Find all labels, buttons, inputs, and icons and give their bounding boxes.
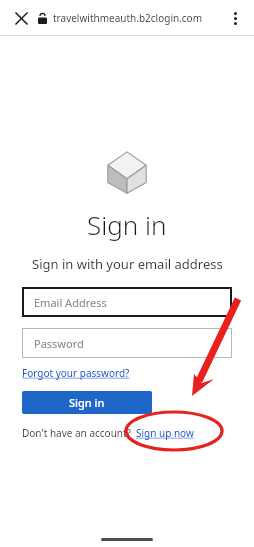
staticText: travelwithmeauth.b2clogin.com [53,11,203,25]
button[interactable]: Password [22,328,232,358]
button[interactable]: Close [8,5,34,31]
button[interactable]: Email Address [22,287,232,317]
staticText: Sign up now [136,426,194,440]
staticText: Password [34,336,84,351]
button[interactable]: Sign up now [136,426,194,440]
staticText: Forgot your password? [22,366,130,380]
button[interactable]: More options [222,5,248,31]
staticText: Email Address [34,295,107,310]
staticText: Sign in [87,207,167,242]
button[interactable]: Sign in [22,391,152,414]
staticText: Sign in with your email address [32,255,223,273]
button[interactable]: travelwithmeauth.b2clogin.com [38,11,203,25]
staticText: Don't have an account? [22,426,131,440]
staticText: Sign in [69,395,105,410]
button[interactable]: Forgot your password? [22,366,130,380]
